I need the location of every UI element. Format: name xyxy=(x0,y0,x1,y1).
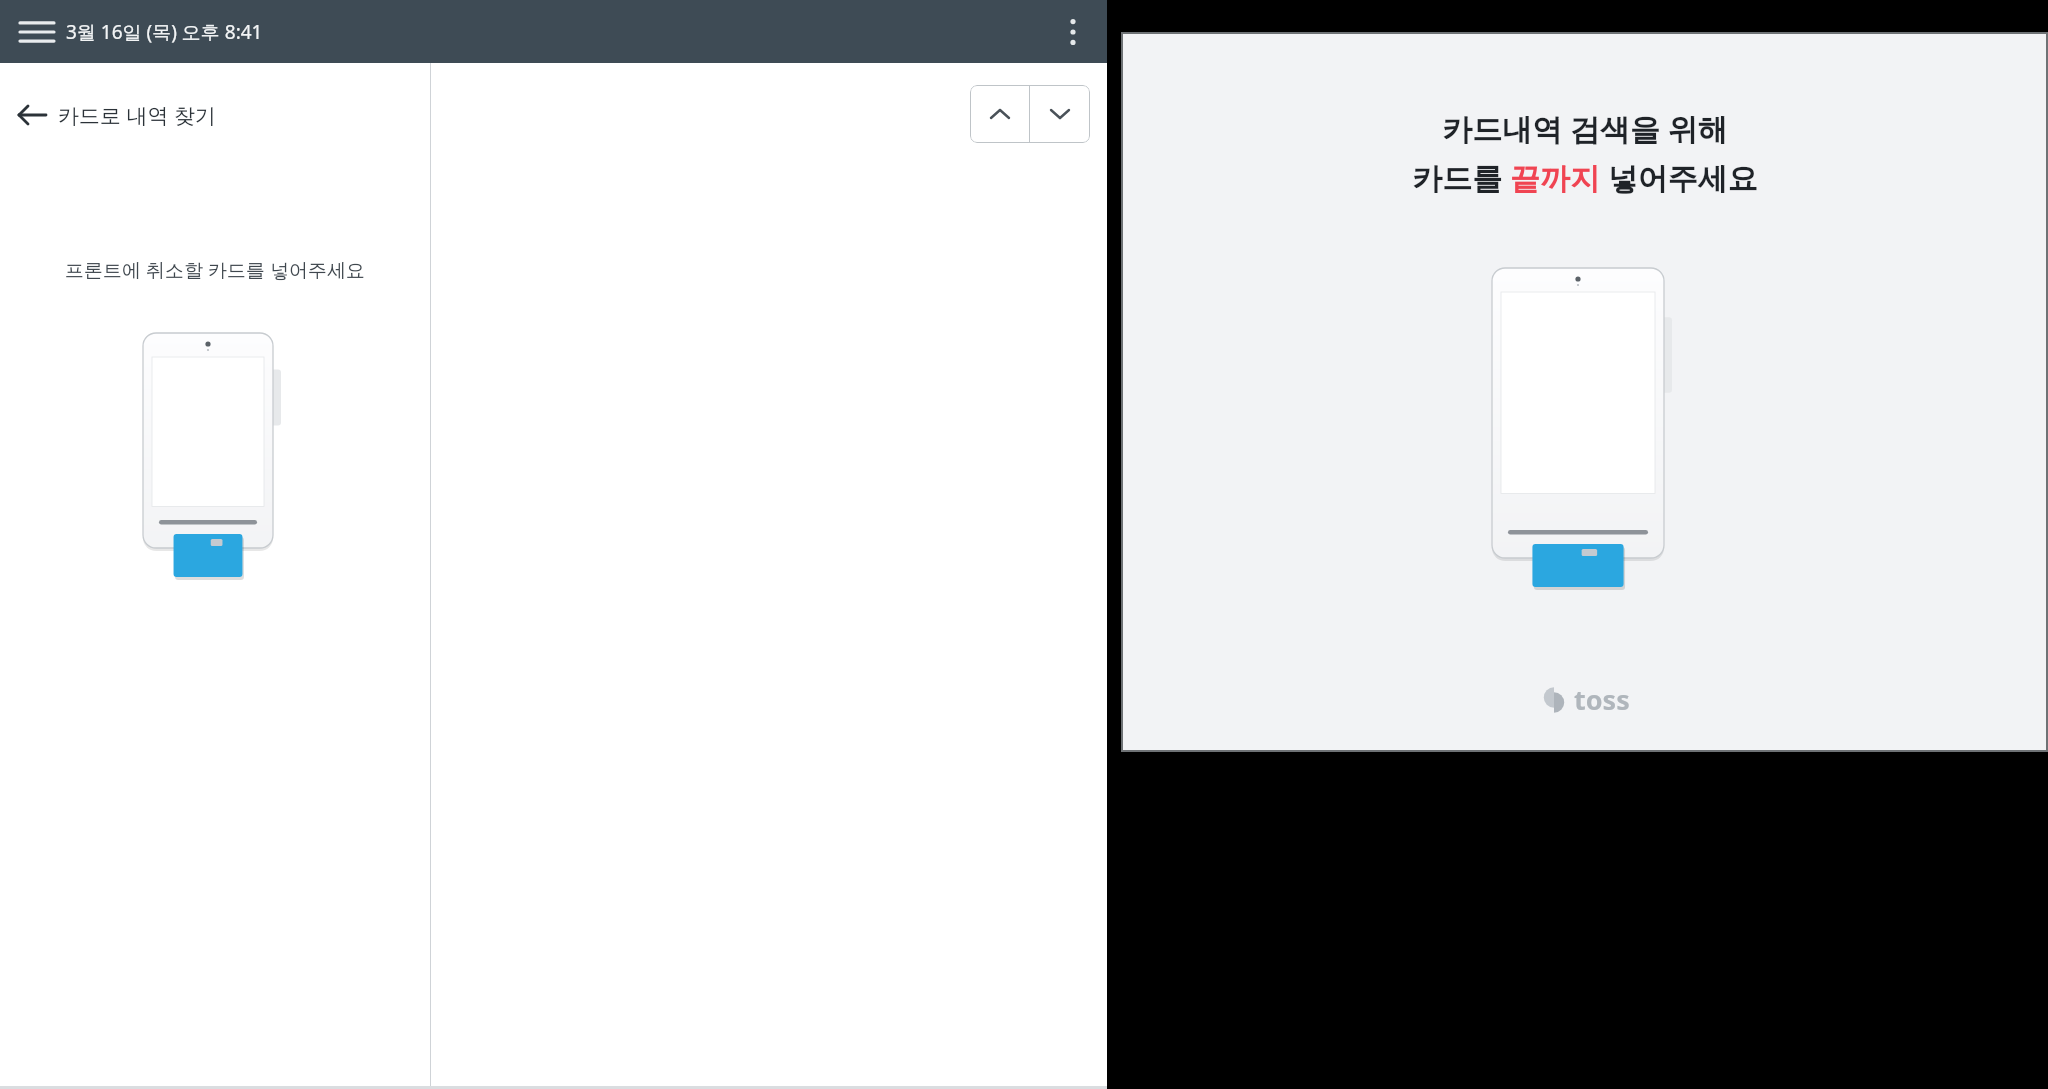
staticText: 카드를 끝까지 넣어주세요 xyxy=(1412,157,1758,198)
staticText: 카드내역 검색을 위해 xyxy=(1442,108,1728,149)
staticText: 프론트에 취소할 카드를 넣어주세요 xyxy=(0,257,430,283)
staticText: 3월 16일 (목) 오후 8:41 xyxy=(66,19,263,45)
button[interactable]: Scroll up xyxy=(970,85,1029,143)
staticText: toss xyxy=(1574,681,1630,718)
button[interactable]: Menu xyxy=(18,15,56,49)
button[interactable]: More options xyxy=(1051,10,1095,54)
button[interactable]: Back xyxy=(12,93,430,137)
button[interactable]: Scroll down xyxy=(1030,85,1090,143)
staticText: 카드로 내역 찾기 xyxy=(58,101,216,130)
other: Back xyxy=(12,95,52,135)
